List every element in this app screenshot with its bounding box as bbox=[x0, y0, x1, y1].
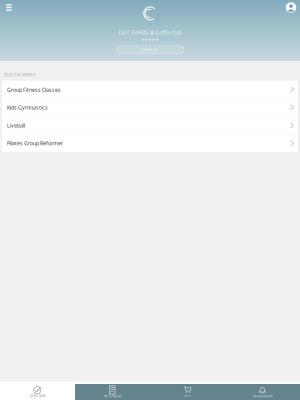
button[interactable]: MY SCHEDULE bbox=[75, 381, 150, 400]
staticText: SELECT A SERVICE bbox=[3, 72, 35, 77]
button[interactable]: Menu bbox=[0, 0, 18, 14]
staticText: STORE bbox=[184, 394, 191, 397]
button[interactable]: View Details bbox=[116, 46, 184, 54]
button[interactable]: Kids Gymnastics bbox=[2, 99, 298, 117]
staticText: Group Fitness Classes bbox=[7, 86, 61, 93]
staticText: Kids Gymnastics bbox=[7, 104, 48, 111]
button[interactable]: STORE bbox=[150, 381, 225, 400]
staticText: NOTIFICATIONS bbox=[253, 394, 272, 398]
button[interactable]: NOTIFICATIONS bbox=[225, 381, 300, 400]
staticText: Liveball bbox=[7, 122, 25, 129]
button[interactable]: Group Fitness Classes bbox=[2, 81, 298, 99]
staticText: MY SCHEDULE bbox=[104, 394, 121, 398]
button[interactable]: BOOK NOW bbox=[0, 381, 75, 400]
staticText: OUT-FitNRG @ Griffin Club bbox=[118, 29, 181, 36]
button[interactable]: Liveball bbox=[2, 117, 298, 134]
button[interactable]: Account bbox=[282, 0, 300, 14]
button[interactable]: Pilates Group Reformer bbox=[2, 134, 298, 152]
staticText: Pilates Group Reformer bbox=[7, 140, 63, 147]
staticText: View Details bbox=[142, 48, 158, 51]
staticText: BOOK NOW bbox=[30, 394, 45, 398]
